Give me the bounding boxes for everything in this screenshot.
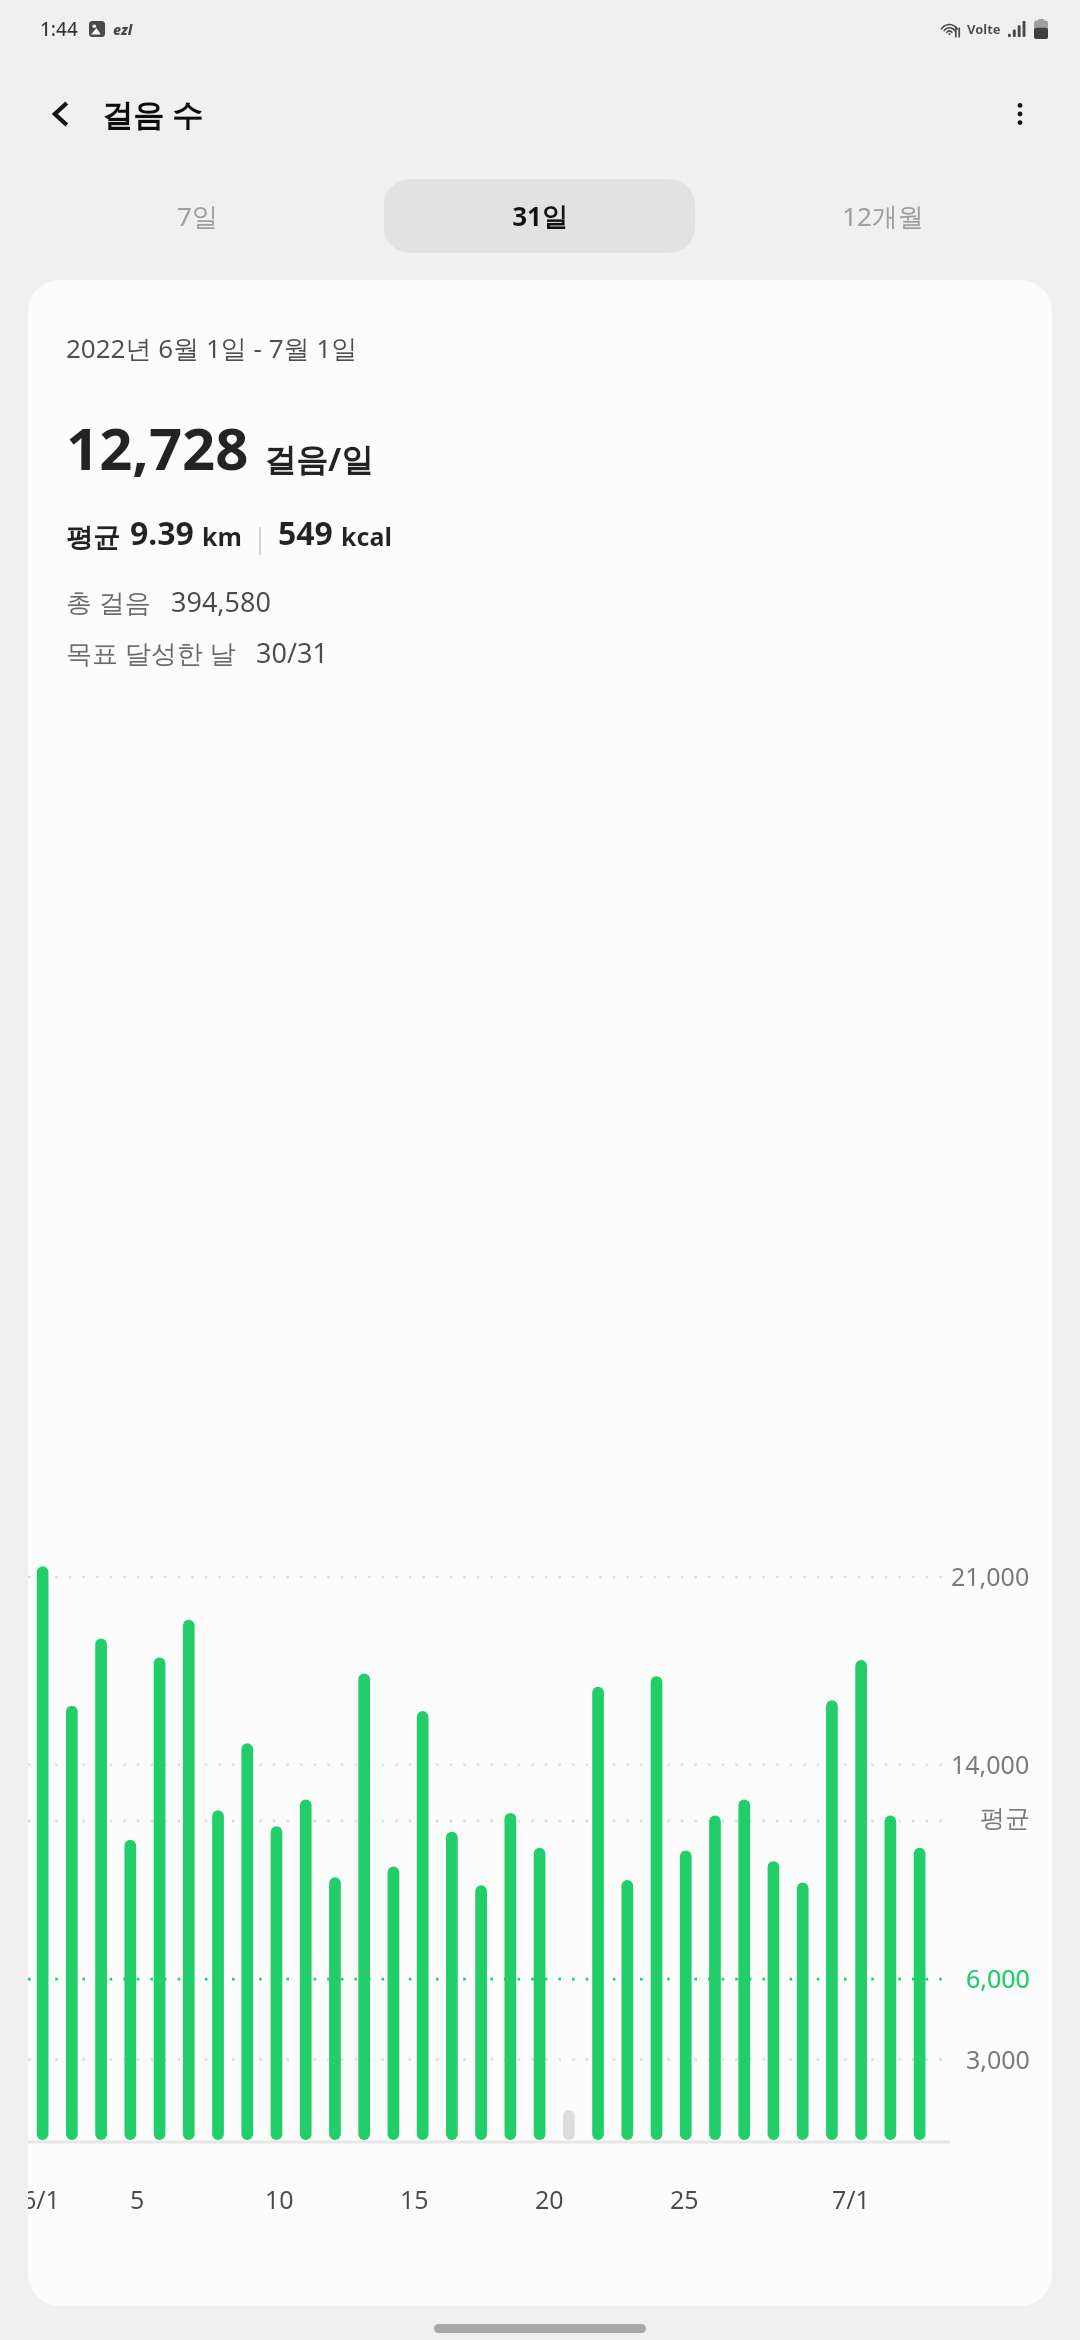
- staticText: 10: [265, 2182, 294, 2216]
- button[interactable]: 12개월: [727, 179, 1038, 253]
- staticText: 394,580: [171, 583, 271, 620]
- button[interactable]: Back: [34, 86, 90, 142]
- staticText: 20: [535, 2182, 564, 2216]
- staticText: 평균: [66, 521, 120, 555]
- staticText: 평균: [980, 1803, 1030, 1834]
- staticText: 12,728: [66, 408, 249, 487]
- staticText: 걸음 수: [102, 93, 204, 135]
- staticText: 14,000: [951, 1747, 1030, 1781]
- staticText: 1:44: [40, 16, 78, 42]
- staticText: 9.39: [130, 511, 194, 555]
- button[interactable]: More options: [992, 86, 1048, 142]
- staticText: 5: [130, 2182, 145, 2216]
- staticText: 걸음/일: [264, 437, 374, 481]
- staticText: 7/1: [832, 2182, 870, 2216]
- staticText: 12개월: [842, 198, 924, 234]
- staticText: 21,000: [951, 1559, 1030, 1593]
- staticText: 15: [400, 2182, 429, 2216]
- staticText: 30/31: [256, 634, 328, 671]
- staticText: 6/1: [28, 2182, 60, 2216]
- staticText: 31일: [512, 198, 568, 234]
- staticText: 목표 달성한 날: [66, 635, 236, 671]
- staticText: 549: [278, 511, 333, 555]
- staticText: ezl: [113, 20, 133, 39]
- staticText: km: [202, 519, 242, 553]
- staticText: 총 걸음: [66, 584, 151, 620]
- button[interactable]: 7일: [42, 179, 352, 253]
- staticText: 25: [670, 2182, 699, 2216]
- staticText: kcal: [341, 519, 392, 553]
- staticText: 3,000: [966, 2042, 1030, 2076]
- staticText: 2022년 6월 1일 - 7월 1일: [66, 330, 358, 366]
- button[interactable]: 31일: [384, 179, 695, 253]
- staticText: 6,000: [966, 1961, 1030, 1995]
- staticText: Volte: [967, 20, 1001, 38]
- staticText: 7일: [177, 198, 218, 234]
